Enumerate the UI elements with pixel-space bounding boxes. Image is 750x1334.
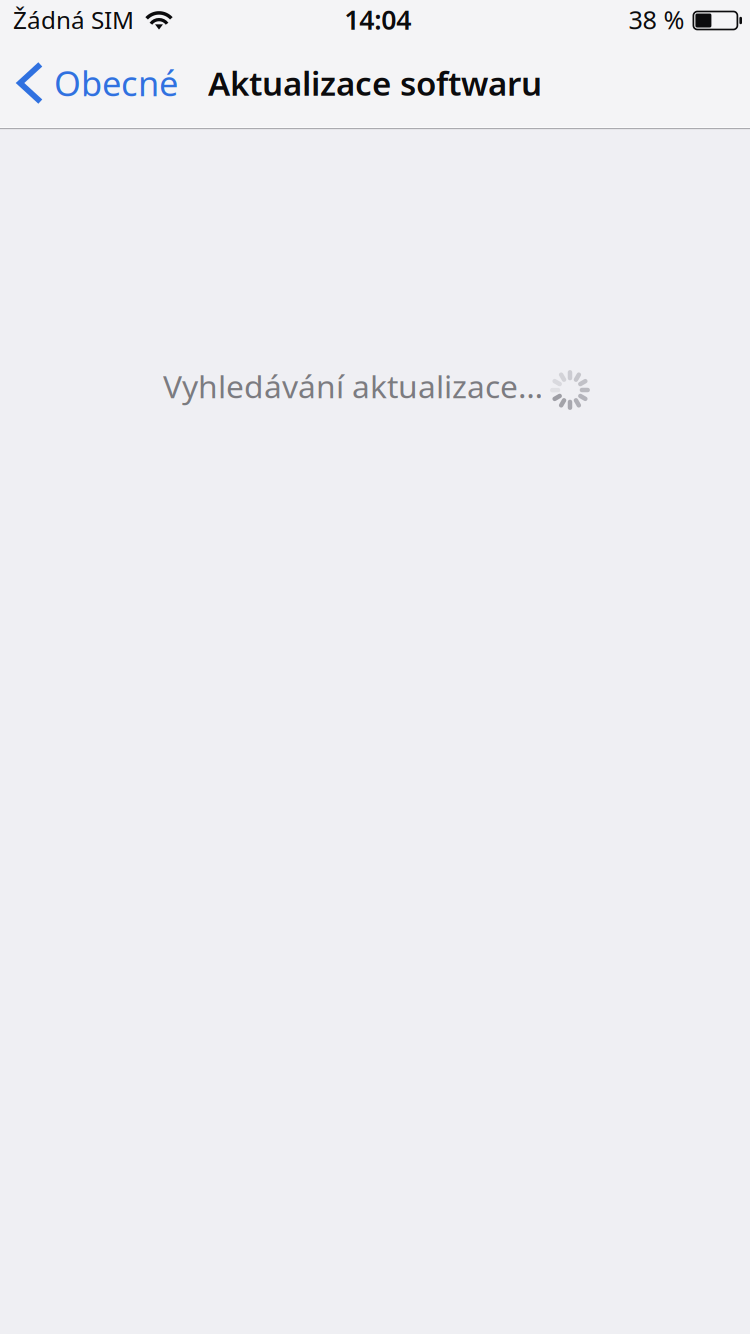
staticText: 38 % <box>628 2 684 37</box>
staticText: 14:04 <box>344 1 411 38</box>
staticText: Aktualizace softwaru <box>208 60 542 105</box>
staticText: Obecné <box>54 60 178 106</box>
staticText: Vyhledávání aktualizace… <box>163 364 543 408</box>
button[interactable]: Zpět na Obecné <box>0 46 184 120</box>
staticText: Žádná SIM <box>13 3 134 36</box>
